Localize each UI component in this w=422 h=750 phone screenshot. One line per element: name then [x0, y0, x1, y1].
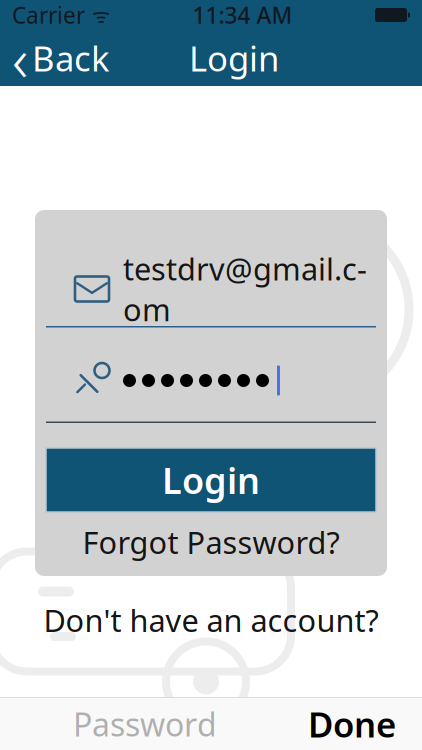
button[interactable]: Login: [46, 448, 376, 512]
staticText: Don't have an account?: [43, 600, 378, 640]
staticText: Done: [308, 701, 396, 747]
staticText: ᯤ: [87, 2, 110, 28]
staticText: testdrv@gmail.com: [123, 248, 367, 330]
staticText: Carrier: [12, 0, 85, 30]
button[interactable]: Don't have an account?: [0, 592, 422, 648]
staticText: Login: [162, 456, 260, 504]
button[interactable]: Done: [290, 698, 414, 750]
button[interactable]: ‹: [0, 30, 118, 86]
staticText: Password: [73, 703, 217, 745]
staticText: Back: [32, 35, 110, 81]
staticText: Login: [189, 35, 279, 81]
staticText: Forgot Password?: [82, 522, 339, 562]
staticText: ‹: [12, 17, 28, 99]
button[interactable]: Forgot Password?: [46, 514, 376, 570]
staticText: 11:34 AM: [192, 0, 292, 30]
